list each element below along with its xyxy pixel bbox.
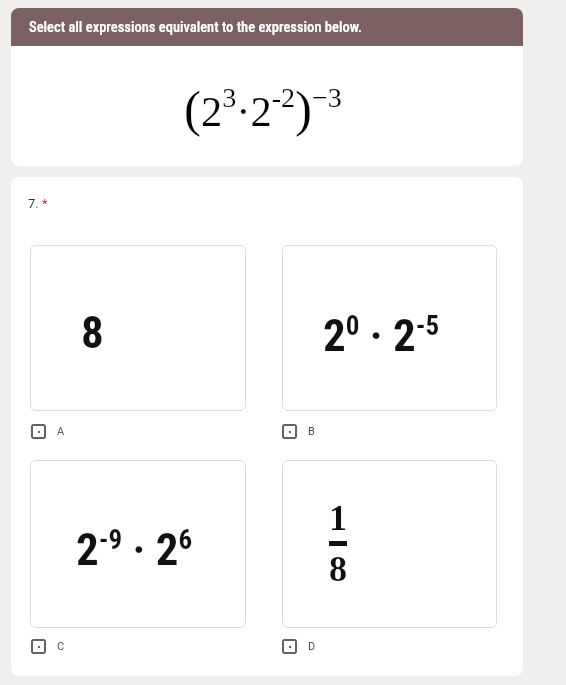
staticText: 7. *	[28, 196, 48, 211]
button[interactable]: 8	[30, 245, 246, 411]
button[interactable]: C	[31, 639, 65, 654]
button[interactable]: B	[282, 424, 315, 439]
staticText: D	[308, 640, 316, 653]
button[interactable]: 2-9 · 26	[30, 460, 246, 628]
staticText: (23·2-2)−3	[184, 81, 342, 137]
staticText: 1	[329, 498, 347, 538]
staticText: 8	[329, 549, 347, 589]
button[interactable]: D	[282, 639, 316, 654]
staticText: B	[308, 425, 315, 438]
staticText: 20 · 2-5	[323, 309, 440, 362]
button[interactable]: 1	[282, 460, 497, 628]
button[interactable]: Select all expressions equivalent to the…	[11, 8, 523, 46]
button[interactable]: A	[31, 424, 65, 439]
staticText: C	[57, 640, 65, 653]
staticText: 2-9 · 26	[76, 523, 193, 576]
staticText: A	[57, 425, 65, 438]
staticText: Select all expressions equivalent to the…	[29, 19, 363, 36]
button[interactable]: 20 · 2-5	[282, 245, 497, 411]
staticText: 8	[81, 306, 104, 359]
